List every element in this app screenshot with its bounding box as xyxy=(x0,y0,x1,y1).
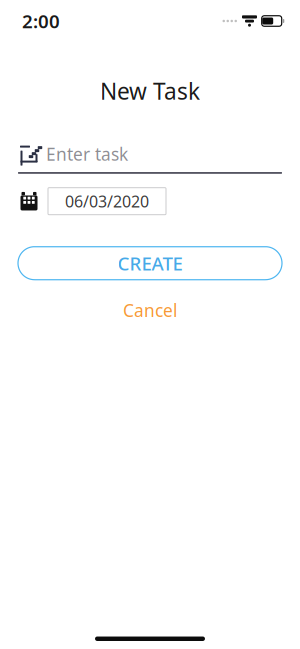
staticText: 2:00 xyxy=(22,9,60,33)
staticText: Enter task xyxy=(46,143,128,166)
staticText: New Task xyxy=(100,76,200,106)
staticText: CREATE xyxy=(117,251,182,276)
button[interactable]: CREATE xyxy=(18,247,282,280)
button[interactable]: Cancel xyxy=(107,293,193,328)
staticText: Cancel xyxy=(123,299,177,322)
button[interactable]: 06/03/2020 xyxy=(48,188,166,215)
button[interactable]: Enter task xyxy=(0,142,300,174)
staticText: 06/03/2020 xyxy=(65,191,149,212)
